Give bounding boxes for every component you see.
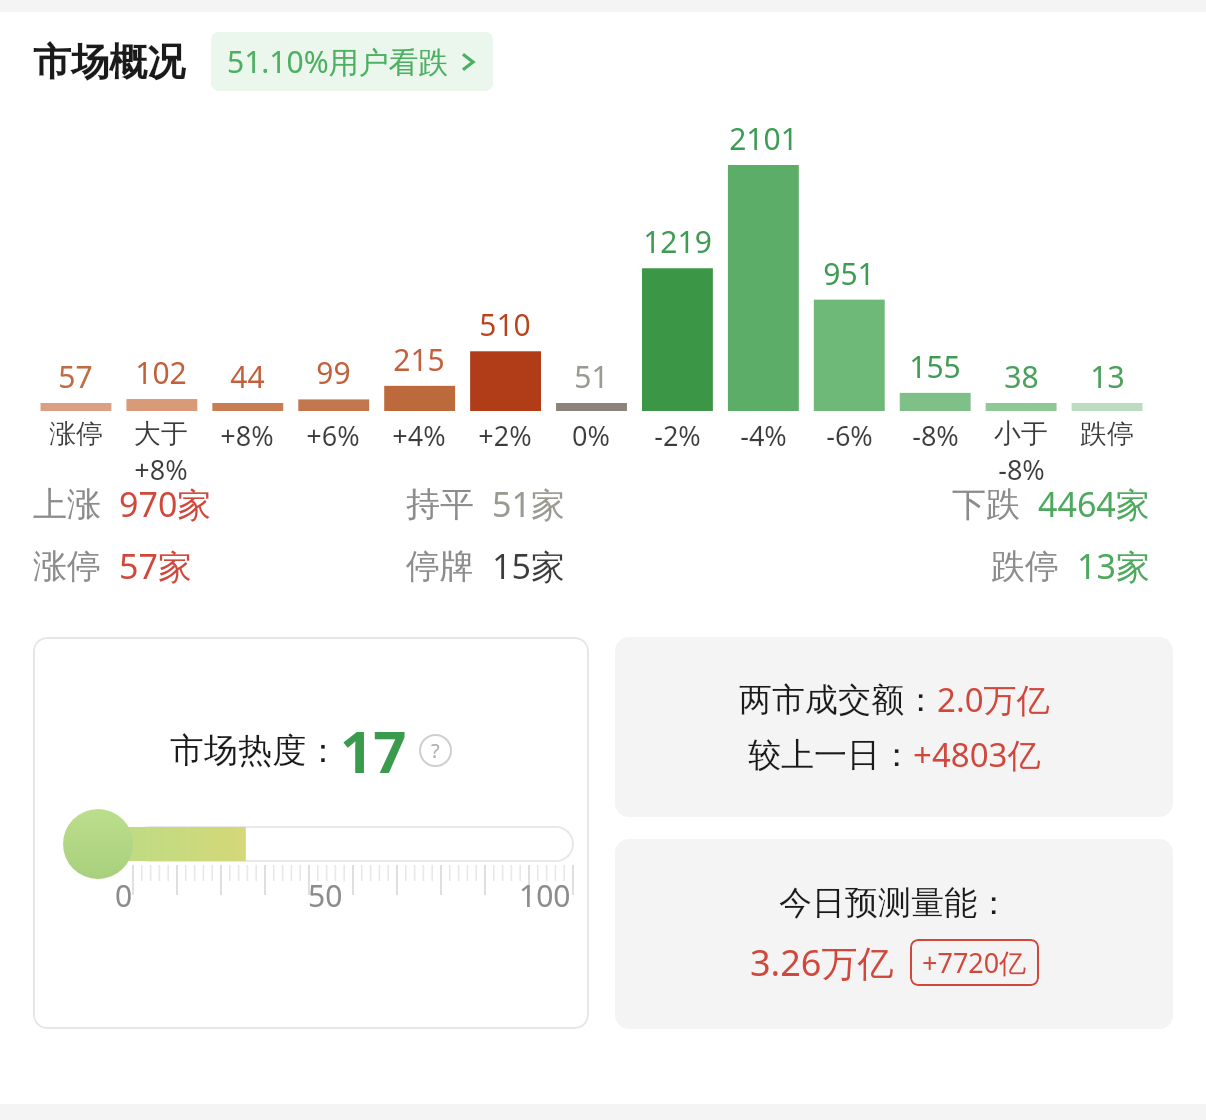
staticText: 市场概况 [33, 38, 185, 86]
staticText: 2101 [729, 118, 798, 159]
staticText: 100 [519, 875, 571, 916]
staticText: +6% [306, 417, 360, 454]
staticText: +4803亿 [913, 732, 1041, 777]
staticText: 951 [823, 253, 875, 294]
staticText: 今日预测量能： [779, 882, 1010, 924]
staticText: 两市成交额： [739, 679, 937, 721]
staticText: 下跌 [952, 483, 1020, 526]
button[interactable]: 说明 [419, 734, 452, 767]
staticText: 持平 [406, 483, 474, 526]
staticText: 跌停 [1080, 417, 1134, 451]
staticText: -8% [912, 417, 959, 454]
staticText: 0 [115, 875, 133, 916]
staticText: 13 [1090, 356, 1125, 397]
button[interactable]: 51.10%用户看跌 [211, 32, 493, 91]
staticText: +8% [220, 417, 274, 454]
staticText: 1219 [643, 221, 712, 262]
staticText: 51.10%用户看跌 [227, 41, 449, 82]
staticText: 停牌 [406, 545, 474, 588]
staticText: 较上一日： [748, 734, 913, 776]
staticText: +2% [478, 417, 532, 454]
staticText: 0% [572, 417, 610, 454]
staticText: 3.26万亿 [750, 938, 894, 987]
staticText: 44 [230, 356, 265, 397]
staticText: 跌停 [991, 545, 1059, 588]
staticText: +4% [392, 417, 446, 454]
staticText: -2% [654, 417, 701, 454]
staticText: 大于 [134, 417, 188, 451]
staticText: 15家 [492, 543, 565, 589]
staticText: -6% [826, 417, 873, 454]
staticText: 155 [909, 346, 961, 387]
button[interactable]: 今日预测量能： [615, 839, 1173, 1029]
staticText: 4464家 [1038, 481, 1150, 527]
staticText: 102 [135, 352, 187, 393]
button[interactable]: 市场热度： [33, 637, 589, 1029]
staticText: -4% [740, 417, 787, 454]
staticText: 市场热度： [170, 729, 340, 772]
staticText: 13家 [1077, 543, 1150, 589]
staticText: 上涨 [33, 483, 101, 526]
staticText: 小于 [994, 417, 1048, 451]
staticText: 970家 [119, 481, 212, 527]
staticText: 51家 [492, 481, 565, 527]
staticText: 涨停 [49, 417, 103, 451]
staticText: 215 [393, 339, 445, 380]
staticText: 51 [574, 356, 609, 397]
staticText: 99 [316, 352, 351, 393]
staticText: +7720亿 [922, 944, 1027, 981]
staticText: 50 [308, 875, 343, 916]
staticText: 17 [340, 711, 407, 790]
staticText: -8% [998, 451, 1045, 481]
staticText: 38 [1004, 356, 1039, 397]
staticText: 57 [58, 356, 93, 397]
staticText: 2.0万亿 [937, 677, 1050, 722]
staticText: +8% [134, 451, 188, 481]
staticText: 510 [479, 304, 531, 345]
staticText: 57家 [119, 543, 192, 589]
staticText: ? [431, 737, 440, 764]
staticText: 涨停 [33, 545, 101, 588]
button[interactable]: 两市成交额： [615, 637, 1173, 817]
